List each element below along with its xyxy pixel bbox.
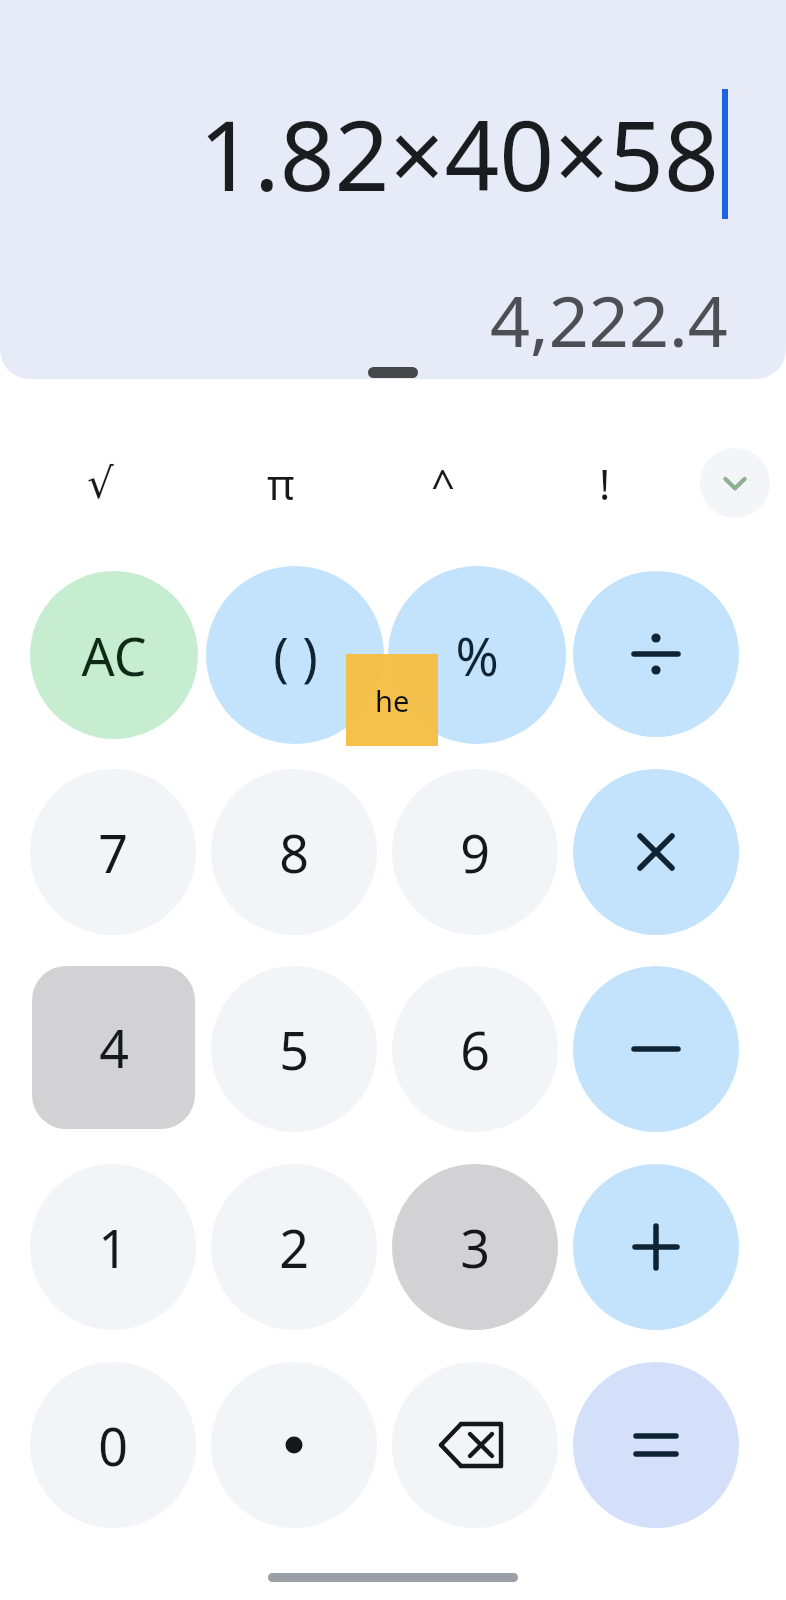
staticText: %	[455, 620, 499, 691]
button[interactable]: !	[524, 440, 686, 526]
button[interactable]: Plus	[573, 1164, 739, 1330]
button[interactable]: ( )	[206, 566, 384, 744]
button[interactable]: 0	[30, 1362, 196, 1528]
staticText: 0	[98, 1410, 128, 1481]
staticText: he	[375, 681, 410, 720]
staticText: 6	[460, 1014, 490, 1085]
staticText: 1	[98, 1212, 128, 1283]
button[interactable]: 6	[392, 966, 558, 1132]
staticText: 4,222.4	[490, 272, 728, 367]
staticText: 8	[279, 817, 309, 888]
button[interactable]: Divide	[573, 571, 739, 737]
staticText: 7	[98, 817, 128, 888]
staticText: !	[599, 455, 611, 512]
button[interactable]: 1	[30, 1164, 196, 1330]
button[interactable]: 7	[30, 769, 196, 935]
button[interactable]: 3	[392, 1164, 558, 1330]
staticText: ^	[431, 455, 456, 512]
button[interactable]: √	[0, 440, 200, 526]
staticText: 4	[99, 1012, 129, 1083]
button[interactable]: Backspace	[392, 1362, 558, 1528]
button[interactable]: Minus	[573, 966, 739, 1132]
button[interactable]: Multiply	[573, 769, 739, 935]
button[interactable]: More functions	[700, 448, 770, 518]
button[interactable]: AC	[30, 571, 198, 739]
button[interactable]: ^	[362, 440, 524, 526]
button[interactable]: 4	[32, 966, 195, 1129]
button[interactable]: Equals	[573, 1362, 739, 1528]
staticText: 3	[460, 1212, 490, 1283]
button[interactable]: Decimal point	[211, 1362, 377, 1528]
button[interactable]: 2	[211, 1164, 377, 1330]
staticText: 5	[279, 1014, 309, 1085]
button[interactable]: %	[388, 566, 566, 744]
staticText: 2	[279, 1212, 309, 1283]
button[interactable]: π	[200, 440, 362, 526]
staticText: AC	[81, 620, 147, 691]
button[interactable]: 5	[211, 966, 377, 1132]
button[interactable]: Expand display	[368, 367, 418, 378]
button[interactable]: 9	[392, 769, 558, 935]
staticText: 1.82×40×58	[199, 88, 719, 219]
staticText: 9	[460, 817, 490, 888]
staticText: ( )	[273, 620, 318, 691]
button[interactable]: 8	[211, 769, 377, 935]
staticText: π	[267, 455, 295, 512]
staticText: √	[87, 459, 114, 508]
